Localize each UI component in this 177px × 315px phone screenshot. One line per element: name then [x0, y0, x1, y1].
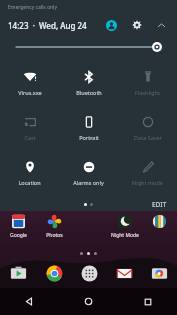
button[interactable] — [72, 213, 107, 247]
button[interactable]: EDIT — [152, 200, 167, 209]
button[interactable]: Night Mode — [107, 213, 142, 247]
staticText: Night mode — [132, 179, 163, 186]
staticText: Portrait — [79, 134, 99, 141]
button[interactable]: Flashlight — [118, 62, 177, 107]
staticText: Location — [18, 179, 41, 186]
button[interactable]: Chrome — [36, 259, 72, 287]
staticText: Flashlight — [135, 89, 160, 96]
button[interactable]: Camera — [142, 259, 177, 287]
button[interactable]: Brightness — [14, 36, 163, 58]
button[interactable]: Home — [59, 288, 118, 315]
button[interactable]: Settings — [129, 17, 145, 33]
button[interactable]: Gmail — [107, 259, 142, 287]
staticText: 14:23 · Wed, Aug 24 — [8, 20, 87, 31]
button[interactable]: Data Saver — [118, 107, 177, 152]
button[interactable]: Collapse — [153, 17, 169, 33]
staticText: Emergency calls only — [8, 4, 57, 11]
button[interactable]: All apps — [72, 259, 107, 287]
staticText: Google — [10, 232, 27, 239]
staticText: EDIT — [152, 200, 167, 209]
button[interactable]: Play Store — [0, 259, 36, 287]
button[interactable]: Google — [0, 213, 36, 247]
staticText: Virus.xxe — [18, 89, 42, 96]
button[interactable]: Alarms only — [59, 152, 118, 197]
button[interactable]: Location — [0, 152, 59, 197]
button[interactable]: Bluetooth — [59, 62, 118, 107]
staticText: Bluetooth — [76, 89, 102, 96]
button[interactable]: Night mode — [118, 152, 177, 197]
button[interactable]: Recents — [118, 288, 177, 315]
staticText: Night Mode — [111, 232, 139, 239]
staticText: Alarms only — [73, 179, 104, 186]
staticText: Data Saver — [134, 134, 162, 141]
button[interactable] — [142, 213, 177, 247]
button[interactable]: User — [103, 17, 119, 33]
button[interactable]: Portrait — [59, 107, 118, 152]
staticText: Cast — [24, 134, 36, 141]
button[interactable]: Virus.xxe — [0, 62, 59, 107]
button[interactable]: Back — [0, 288, 59, 315]
button[interactable]: Photos — [36, 213, 72, 247]
button[interactable]: Cast — [0, 107, 59, 152]
staticText: Photos — [46, 232, 63, 239]
